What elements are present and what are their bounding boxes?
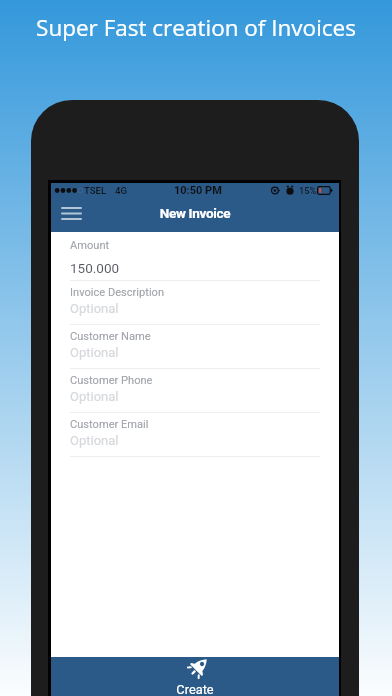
staticText: Super Fast creation of Invoices: [0, 12, 392, 43]
staticText: Customer Name: [70, 330, 151, 343]
staticText: Customer Phone: [70, 374, 153, 387]
staticText: Optional: [70, 389, 119, 404]
button[interactable]: Invoice Description: [51, 281, 339, 325]
staticText: 15%: [299, 185, 317, 196]
staticText: TSEL: [84, 185, 107, 196]
staticText: 10:50 PM: [174, 184, 222, 197]
button[interactable]: Amount: [51, 232, 339, 281]
staticText: Customer Email: [70, 418, 149, 431]
staticText: 150.000: [70, 260, 120, 276]
other: Create invoice: [189, 656, 210, 677]
button[interactable]: Open navigation menu: [59, 201, 83, 225]
staticText: Optional: [70, 301, 119, 316]
staticText: Optional: [70, 345, 119, 360]
button[interactable]: Customer Email: [51, 413, 339, 457]
staticText: Amount: [70, 239, 110, 252]
staticText: Invoice Description: [70, 286, 165, 299]
button[interactable]: Create invoice: [51, 657, 339, 696]
staticText: Create: [51, 682, 339, 696]
button[interactable]: Customer Name: [51, 325, 339, 369]
button[interactable]: Customer Phone: [51, 369, 339, 413]
staticText: Optional: [70, 433, 119, 448]
staticText: New Invoice: [51, 205, 339, 221]
staticText: 4G: [115, 185, 127, 196]
